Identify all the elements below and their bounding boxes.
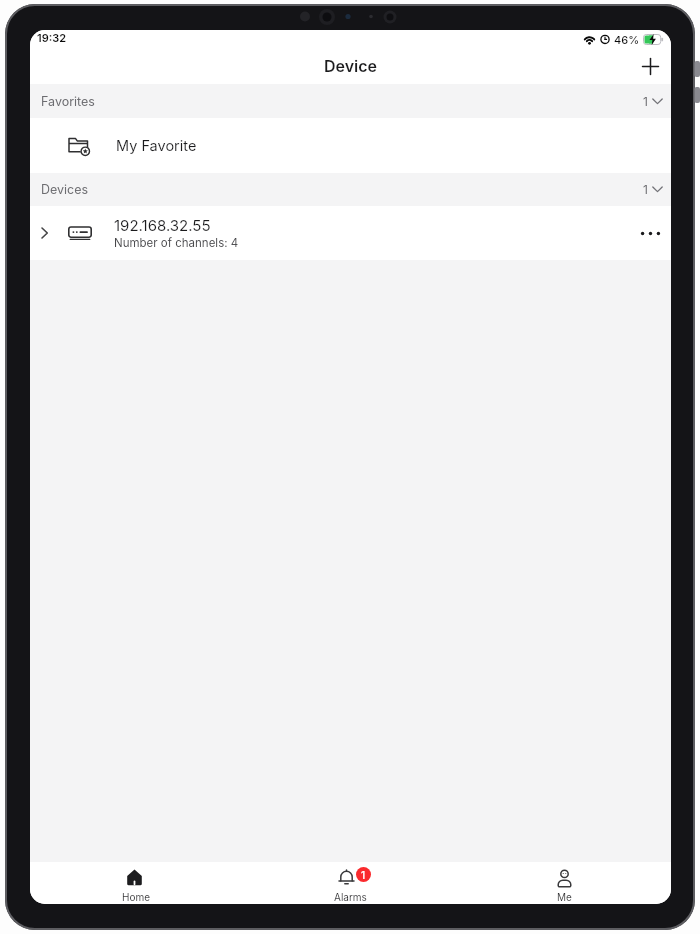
button[interactable]: 192.168.32.55 bbox=[30, 206, 671, 260]
staticText: 1 bbox=[361, 869, 366, 881]
staticText: Device bbox=[324, 56, 378, 75]
staticText: Me bbox=[557, 891, 572, 903]
staticText: Devices bbox=[41, 182, 89, 197]
button[interactable]: Favorites bbox=[30, 84, 671, 118]
staticText: Alarms bbox=[334, 891, 367, 903]
button[interactable]: 1 bbox=[243, 862, 457, 904]
staticText: 46% bbox=[614, 33, 640, 45]
button[interactable]: My Favorite bbox=[30, 118, 671, 173]
staticText: 1 bbox=[643, 182, 648, 197]
button[interactable]: Home bbox=[30, 862, 243, 904]
staticText: Home bbox=[122, 891, 151, 903]
staticText: 1 bbox=[643, 94, 648, 109]
staticText: 192.168.32.55 bbox=[114, 216, 211, 234]
button[interactable] bbox=[642, 58, 659, 75]
staticText: My Favorite bbox=[116, 137, 197, 155]
button[interactable]: Me bbox=[457, 862, 671, 904]
staticText: Number of channels: 4 bbox=[114, 236, 239, 250]
button[interactable] bbox=[640, 231, 661, 236]
button[interactable]: Devices bbox=[30, 173, 671, 206]
staticText: 19:32 bbox=[37, 31, 67, 44]
staticText: Favorites bbox=[41, 94, 95, 109]
